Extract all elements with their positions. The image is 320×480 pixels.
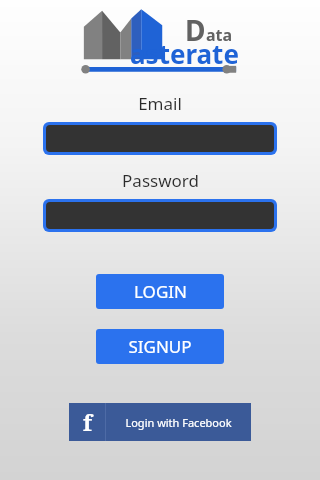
button[interactable]: f (69, 403, 251, 441)
button[interactable]: LOGIN (96, 274, 224, 309)
staticText: Password (122, 169, 199, 192)
button[interactable] (46, 202, 274, 229)
staticText: D (185, 11, 206, 49)
button[interactable] (46, 125, 274, 152)
staticText: Login with Facebook (125, 415, 232, 430)
button[interactable]: SIGNUP (96, 329, 224, 364)
staticText: asterate (130, 36, 239, 71)
staticText: ata (206, 24, 233, 46)
staticText: Email (138, 92, 182, 115)
staticText: LOGIN (134, 280, 187, 303)
staticText: f (83, 407, 92, 437)
staticText: SIGNUP (128, 335, 192, 358)
